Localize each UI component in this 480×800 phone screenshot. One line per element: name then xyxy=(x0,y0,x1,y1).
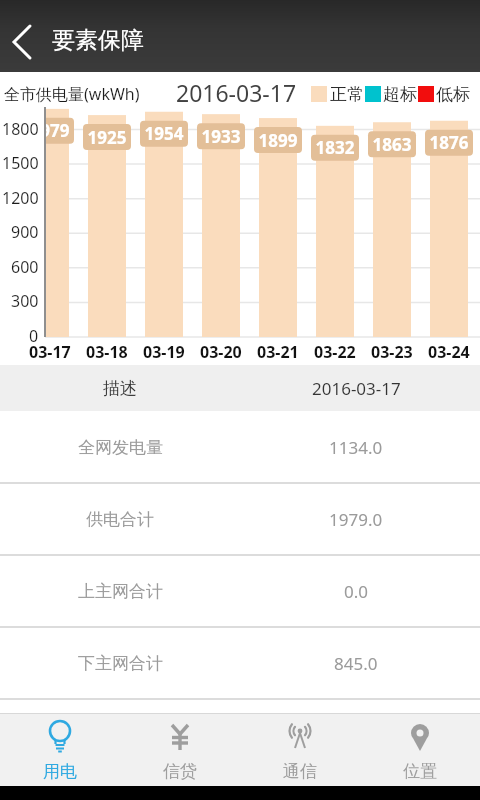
staticText: 2016-03-17 xyxy=(312,377,401,400)
staticText: 信贷 xyxy=(163,761,197,782)
staticText: 2016-03-17 xyxy=(176,77,297,108)
button[interactable]: 全网发电量 xyxy=(0,411,480,483)
button[interactable]: 信贷 xyxy=(120,713,240,786)
staticText: 位置 xyxy=(403,761,437,782)
staticText: 0.0 xyxy=(344,580,369,603)
staticText: 1134.0 xyxy=(329,436,383,459)
button[interactable]: 用电 xyxy=(0,713,120,786)
button[interactable] xyxy=(0,16,48,68)
staticText: 845.0 xyxy=(334,652,378,675)
staticText: 要素保障 xyxy=(52,26,144,55)
button[interactable]: 通信 xyxy=(240,713,360,786)
button[interactable]: 上主网合计 xyxy=(0,555,480,627)
staticText: 用电 xyxy=(43,761,77,782)
staticText: 下主网合计 xyxy=(78,653,163,674)
staticText: 正常 xyxy=(330,84,364,105)
staticText: 供电合计 xyxy=(86,509,154,530)
staticText: 全市供电量(wkWh) xyxy=(4,83,140,105)
button[interactable]: 位置 xyxy=(360,713,480,786)
button[interactable]: 下主网合计 xyxy=(0,627,480,699)
staticText: 1979.0 xyxy=(329,508,383,531)
staticText: 描述 xyxy=(103,378,137,399)
staticText: 通信 xyxy=(283,761,317,782)
staticText: 低标 xyxy=(436,84,470,105)
staticText: 全网发电量 xyxy=(78,437,163,458)
staticText: 超标 xyxy=(383,84,417,105)
staticText: 上主网合计 xyxy=(78,581,163,602)
button[interactable]: 供电合计 xyxy=(0,483,480,555)
